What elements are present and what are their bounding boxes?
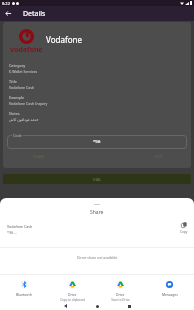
- staticText: EDIT: [155, 154, 163, 159]
- button[interactable]: Drive: [48, 280, 96, 302]
- button[interactable]: Home: [90, 302, 104, 310]
- button[interactable]: Back: [58, 302, 72, 310]
- staticText: Copy to clipboard: [60, 298, 85, 302]
- staticText: Messages: [162, 292, 178, 297]
- button[interactable]: SHARE: [27, 151, 51, 162]
- button[interactable]: Drive: [96, 280, 145, 302]
- staticText: E-Wallet Services: [9, 69, 38, 74]
- staticText: *9# ...: [7, 230, 18, 235]
- button[interactable]: Copy: [180, 222, 188, 234]
- staticText: Example: [9, 95, 25, 100]
- staticText: Vodafone: [46, 34, 82, 45]
- staticText: Vodafone Cash: [9, 85, 35, 90]
- staticText: DIAL: [93, 177, 102, 182]
- staticText: vodafone: [10, 45, 43, 55]
- staticText: Notes: [9, 111, 20, 116]
- staticText: *9#: [93, 139, 101, 145]
- staticText: Vodafone Cash: [7, 224, 33, 229]
- staticText: Details: [23, 9, 46, 19]
- button[interactable]: Navigate up: [0, 6, 16, 21]
- button[interactable]: Bluetooth: [0, 280, 48, 297]
- staticText: خدمة فودافون كاش: [9, 117, 39, 122]
- staticText: Drive: [116, 292, 125, 297]
- staticText: Direct share not available: [77, 255, 118, 260]
- staticText: Vodafone Cash Inquiry: [9, 101, 48, 106]
- staticText: Title: [9, 79, 17, 84]
- button[interactable]: Recent apps: [122, 302, 136, 310]
- button[interactable]: DIAL: [3, 174, 191, 184]
- button[interactable]: Messages: [145, 280, 194, 297]
- staticText: SHARE: [33, 154, 45, 159]
- staticText: 8:22: [2, 1, 10, 6]
- staticText: Category: [9, 63, 26, 68]
- staticText: Save to Drive: [111, 298, 130, 302]
- staticText: Code: [13, 133, 22, 138]
- staticText: Share: [90, 209, 104, 216]
- staticText: Copy: [180, 230, 188, 234]
- staticText: Drive: [68, 292, 77, 297]
- staticText: Bluetooth: [16, 292, 32, 297]
